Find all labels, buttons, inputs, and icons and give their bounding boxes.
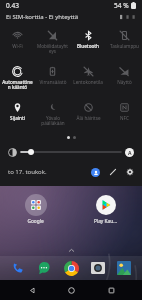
button[interactable]: Edit tiles — [109, 168, 117, 176]
button[interactable]: Settings — [126, 168, 134, 176]
button[interactable]: Lentokonetila — [70, 61, 106, 97]
button[interactable]: Play Kau… — [91, 194, 120, 225]
staticText: A — [128, 149, 132, 156]
button[interactable]: Google — [21, 194, 50, 225]
button[interactable]: Näyttö — [106, 61, 142, 97]
button[interactable]: Auto brightness — [125, 148, 134, 157]
button[interactable]: Virransäästö — [35, 61, 70, 97]
button[interactable]: Yövalo päälläkään — [35, 97, 70, 133]
button[interactable]: Mobiilidatayhteys — [35, 25, 70, 61]
staticText: Mobiilidatayhteys — [36, 43, 69, 54]
staticText: Virransäästö — [39, 79, 67, 85]
staticText: NFC — [120, 115, 129, 121]
button[interactable]: Recents — [103, 282, 119, 298]
button[interactable]: Photos — [115, 259, 133, 277]
staticText: Näyttö — [117, 79, 132, 85]
button[interactable]: All apps — [68, 247, 75, 254]
button[interactable]: User — [91, 168, 100, 177]
staticText: Wi-Fi — [12, 43, 23, 49]
button[interactable]: Phone — [9, 259, 27, 277]
staticText: 54 % — [114, 1, 129, 10]
staticText: Ei SIM-korttia - Ei yhteyttä — [6, 13, 79, 21]
button[interactable] — [21, 146, 121, 158]
staticText: Play Kau… — [94, 218, 117, 225]
staticText: Bluetooth — [77, 43, 99, 49]
button[interactable]: Sijainti — [0, 97, 35, 133]
other: Brightness low — [8, 148, 17, 157]
staticText: to 17. toukok. — [8, 168, 47, 176]
staticText: Sijainti — [10, 115, 25, 121]
button[interactable]: Messages — [35, 259, 53, 277]
staticText: Yövalo päälläkään — [41, 115, 65, 126]
button[interactable]: Wi-Fi — [0, 25, 35, 61]
staticText: Taskulamppu — [110, 43, 139, 49]
staticText: 0.43 — [6, 1, 19, 10]
button[interactable]: Home — [63, 282, 79, 298]
staticText: Google — [27, 218, 44, 225]
button[interactable]: Chrome — [62, 259, 80, 277]
staticText: Automaattinen kääntö — [1, 79, 34, 90]
button[interactable]: Back — [24, 282, 40, 298]
staticText: Lentokonetila — [73, 79, 103, 85]
button[interactable]: Taskulamppu — [106, 25, 142, 61]
button[interactable]: Camera — [89, 259, 107, 277]
button[interactable]: Älä häiritse — [70, 97, 106, 133]
button[interactable]: NFC — [106, 97, 142, 133]
staticText: Älä häiritse — [76, 115, 101, 121]
button[interactable]: Automaattinen kääntö — [0, 61, 35, 97]
button[interactable]: Bluetooth — [70, 25, 106, 61]
